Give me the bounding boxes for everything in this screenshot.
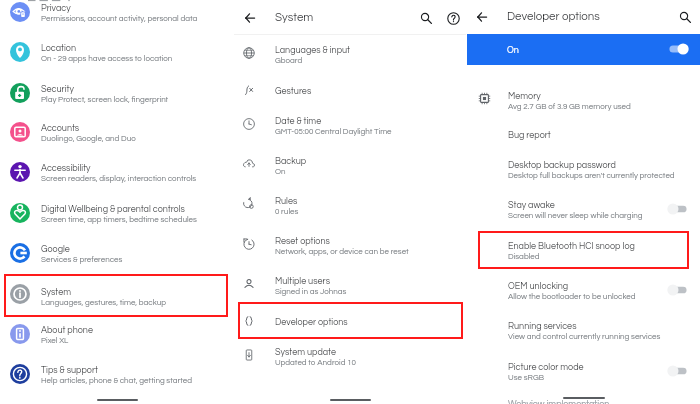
staticText: Location <box>41 44 76 53</box>
button[interactable]: Back <box>240 8 260 28</box>
button[interactable]: Bug report <box>466 122 700 152</box>
button[interactable]: Location <box>0 35 234 65</box>
button[interactable]: Google <box>0 236 234 266</box>
staticText: Network, apps, or device can be reset <box>275 247 409 255</box>
staticText: Languages & input <box>275 46 351 55</box>
staticText: Use sRGB <box>508 373 544 381</box>
button[interactable]: Tips & support <box>0 357 234 387</box>
button[interactable]: Digital Wellbeing & parental controls <box>0 196 234 226</box>
staticText: Gboard <box>275 56 303 64</box>
button[interactable]: Backup <box>234 148 466 178</box>
staticText: System update <box>275 348 336 357</box>
button[interactable]: Security <box>0 76 234 106</box>
staticText: Desktop full backups aren't currently pr… <box>508 171 675 179</box>
staticText: Webview implementation <box>508 400 610 404</box>
staticText: Google <box>41 245 70 254</box>
button[interactable]: About phone <box>0 317 234 347</box>
button[interactable]: Accessibility <box>0 155 234 185</box>
staticText: Screen readers, display, interaction con… <box>41 174 197 182</box>
staticText: Bug report <box>508 131 551 140</box>
button[interactable]: Gestures <box>234 78 466 108</box>
staticText: On <box>507 46 519 55</box>
staticText: Digital Wellbeing & parental controls <box>41 205 185 214</box>
staticText: View and control currently running servi… <box>508 332 661 340</box>
staticText: Allow the bootloader to be unlocked <box>508 292 636 300</box>
button[interactable]: OEM unlocking <box>466 273 700 303</box>
staticText: OEM unlocking <box>508 282 569 291</box>
staticText: Screen will never sleep while charging <box>508 211 643 219</box>
button[interactable]: Running services <box>466 313 700 343</box>
button[interactable]: Stay awake <box>466 192 700 222</box>
staticText: About phone <box>41 326 93 335</box>
button[interactable]: On <box>467 34 700 65</box>
staticText: Developer options <box>507 11 600 23</box>
staticText: Memory <box>508 92 541 101</box>
staticText: Multiple users <box>275 277 330 286</box>
staticText: Date & time <box>275 117 322 126</box>
staticText: Developer options <box>275 318 348 327</box>
button[interactable]: Privacy <box>0 0 234 25</box>
staticText: Avg 2.7 GB of 3.9 GB memory used <box>508 102 631 110</box>
staticText: Screen time, app timers, bedtime schedul… <box>41 215 197 223</box>
button[interactable]: System update <box>234 339 466 369</box>
staticText: Backup <box>275 157 307 166</box>
button[interactable]: Multiple users <box>234 268 466 298</box>
staticText: Services & preferences <box>41 255 123 263</box>
button[interactable]: Back <box>472 7 492 27</box>
button[interactable]: Help <box>441 6 465 30</box>
staticText: On <box>275 167 286 175</box>
staticText: Security <box>41 85 74 94</box>
button[interactable]: Developer options <box>234 309 466 339</box>
staticText: System <box>275 12 314 24</box>
staticText: Permissions, account activity, personal … <box>41 14 198 22</box>
staticText: Desktop backup password <box>508 161 616 170</box>
staticText: 0 rules <box>275 207 299 215</box>
staticText: Rules <box>275 197 298 206</box>
button[interactable]: Reset options <box>234 228 466 258</box>
staticText: Accounts <box>41 124 80 133</box>
staticText: Pixel XL <box>41 336 69 344</box>
staticText: Running services <box>508 322 577 331</box>
staticText: Signed in as Johnas <box>275 287 347 295</box>
staticText: Reset options <box>275 237 330 246</box>
staticText: Stay awake <box>508 201 555 210</box>
button[interactable]: Desktop backup password <box>466 152 700 182</box>
staticText: Tips & support <box>41 366 98 375</box>
staticText: Disabled <box>508 252 540 260</box>
button[interactable]: Search <box>414 6 438 30</box>
button[interactable]: Memory <box>466 83 700 113</box>
staticText: Play Protect, screen lock, fingerprint <box>41 95 169 103</box>
button[interactable]: Picture color mode <box>466 354 700 384</box>
button[interactable]: Enable Bluetooth HCI snoop log <box>466 233 700 263</box>
button[interactable]: System <box>0 279 234 309</box>
button[interactable]: Accounts <box>0 115 234 145</box>
staticText: Updated to Android 10 <box>275 358 356 366</box>
staticText: System <box>41 288 72 297</box>
staticText: Accessibility <box>41 164 91 173</box>
staticText: GMT-05:00 Central Daylight Time <box>275 127 392 135</box>
button[interactable]: Languages & input <box>234 37 466 67</box>
staticText: Enable Bluetooth HCI snoop log <box>508 242 635 251</box>
staticText: Picture color mode <box>508 363 584 372</box>
button[interactable]: Rules <box>234 188 466 218</box>
staticText: Duolingo, Google, and Duo <box>41 134 136 142</box>
staticText: On - 29 apps have access to location <box>41 54 173 62</box>
staticText: Privacy <box>41 4 71 13</box>
staticText: Help articles, phone & chat, getting sta… <box>41 376 193 384</box>
button[interactable]: Search <box>673 5 697 29</box>
staticText: Gestures <box>275 87 312 96</box>
staticText: Languages, gestures, time, backup <box>41 298 166 306</box>
button[interactable]: Date & time <box>234 108 466 138</box>
